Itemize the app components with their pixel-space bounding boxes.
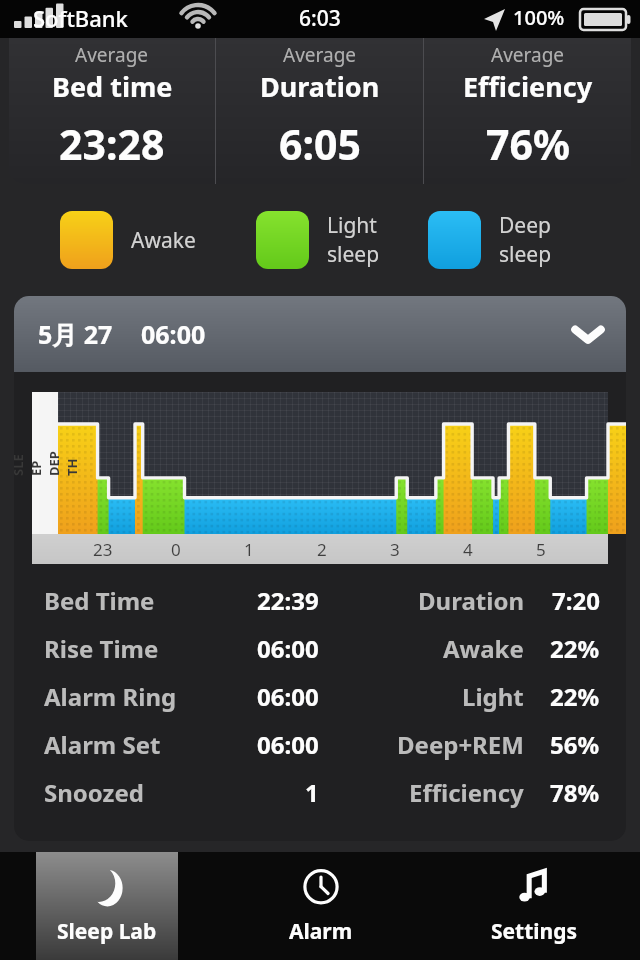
staticText: SLEEP DEPTH bbox=[14, 450, 81, 476]
staticText: 3 bbox=[390, 538, 400, 561]
staticText: 22% bbox=[550, 632, 600, 665]
staticText: Awake bbox=[443, 632, 524, 665]
button[interactable]: Deep bbox=[428, 211, 552, 269]
staticText: sleep bbox=[499, 240, 552, 269]
staticText: 06:00 bbox=[257, 680, 319, 713]
staticText: Deep bbox=[499, 211, 551, 240]
button[interactable]: 5月 27 bbox=[14, 296, 626, 372]
button[interactable]: Rise Time bbox=[44, 624, 600, 672]
staticText: Snoozed bbox=[44, 776, 144, 809]
staticText: 6:03 bbox=[299, 4, 341, 33]
staticText: 100% bbox=[513, 4, 565, 31]
staticText: Efficiency bbox=[409, 776, 524, 809]
staticText: 5月 27 bbox=[38, 317, 113, 351]
button[interactable]: Awake bbox=[60, 211, 196, 269]
staticText: 1 bbox=[244, 538, 254, 561]
other: Alarm bbox=[298, 866, 344, 912]
staticText: 5 bbox=[536, 538, 546, 561]
staticText: Duration bbox=[418, 584, 524, 617]
staticText: Awake bbox=[131, 226, 196, 255]
staticText: Average bbox=[491, 42, 565, 68]
staticText: 06:00 bbox=[257, 728, 319, 761]
other: Settings bbox=[511, 866, 557, 912]
button[interactable]: Snoozed bbox=[44, 768, 600, 816]
staticText: 22% bbox=[550, 680, 600, 713]
staticText: Sleep Lab bbox=[57, 917, 157, 946]
staticText: 06:00 bbox=[257, 632, 319, 665]
staticText: 7:20 bbox=[552, 584, 600, 617]
staticText: 78% bbox=[550, 776, 600, 809]
staticText: Alarm bbox=[289, 917, 353, 946]
staticText: sleep bbox=[327, 240, 380, 269]
staticText: SoftBank bbox=[33, 3, 128, 33]
staticText: 56% bbox=[550, 728, 600, 761]
staticText: Deep+REM bbox=[397, 728, 524, 761]
staticText: 0 bbox=[171, 538, 181, 561]
button[interactable]: Average bbox=[216, 38, 423, 184]
staticText: 76% bbox=[486, 116, 570, 172]
staticText: Average bbox=[283, 42, 357, 68]
staticText: 22:39 bbox=[257, 584, 319, 617]
staticText: Rise Time bbox=[44, 632, 159, 665]
other: Collapse session bbox=[572, 318, 604, 350]
button[interactable]: Average bbox=[9, 38, 215, 184]
other: Sleep Lab bbox=[84, 866, 130, 912]
staticText: 1 bbox=[305, 776, 319, 809]
button[interactable]: Average bbox=[424, 38, 631, 184]
staticText: 6:05 bbox=[279, 116, 361, 172]
button[interactable]: Alarm Ring bbox=[44, 672, 600, 720]
button[interactable]: Bed Time bbox=[44, 576, 600, 624]
staticText: Efficiency bbox=[463, 68, 593, 105]
button[interactable]: Settings bbox=[463, 852, 605, 960]
staticText: Alarm Set bbox=[44, 728, 161, 761]
staticText: 4 bbox=[463, 538, 473, 561]
staticText: Alarm Ring bbox=[44, 680, 177, 713]
staticText: 23:28 bbox=[59, 116, 165, 172]
staticText: 2 bbox=[317, 538, 327, 561]
button[interactable]: Light bbox=[256, 211, 380, 269]
button[interactable]: Sleep Lab bbox=[36, 852, 178, 960]
staticText: Light bbox=[327, 211, 377, 240]
staticText: Settings bbox=[491, 917, 578, 946]
staticText: Bed Time bbox=[44, 584, 155, 617]
button[interactable]: Alarm Set bbox=[44, 720, 600, 768]
staticText: Duration bbox=[260, 68, 380, 105]
staticText: 23 bbox=[93, 538, 113, 561]
staticText: Bed time bbox=[52, 68, 173, 105]
staticText: Light bbox=[462, 680, 524, 713]
staticText: Average bbox=[75, 42, 149, 68]
button[interactable]: Alarm bbox=[250, 852, 392, 960]
staticText: 06:00 bbox=[141, 317, 206, 351]
